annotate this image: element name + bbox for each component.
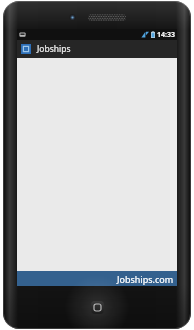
button[interactable]: Home	[91, 301, 104, 314]
staticText: Jobships	[37, 43, 71, 55]
staticText: Jobships.com	[117, 273, 174, 285]
staticText: 14:33	[157, 30, 175, 40]
other: Jobships app icon	[21, 44, 31, 54]
other: Notification	[19, 31, 26, 38]
button[interactable]: Jobships.com	[17, 271, 177, 286]
button[interactable]: Jobships app icon	[17, 40, 177, 58]
